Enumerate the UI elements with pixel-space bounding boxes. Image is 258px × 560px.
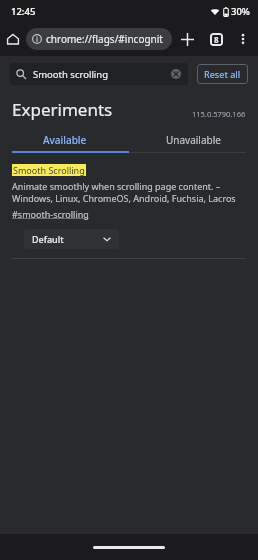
button[interactable]: #smooth-scrolling bbox=[12, 208, 89, 220]
button[interactable]: Reset all bbox=[197, 64, 248, 84]
staticText: Reset all bbox=[204, 68, 241, 80]
staticText: chrome://flags/#incognit bbox=[46, 32, 163, 46]
staticText: 115.0.5790.166 bbox=[192, 109, 246, 119]
staticText: Smooth Scrolling bbox=[13, 164, 85, 176]
staticText: Unavailable bbox=[166, 133, 221, 147]
button[interactable]: Smooth scrolling bbox=[10, 63, 188, 85]
staticText: 30% bbox=[231, 5, 250, 18]
button[interactable]: Available bbox=[0, 129, 129, 151]
button[interactable]: New tab bbox=[172, 24, 202, 54]
staticText: Animate smoothly when scrolling page con… bbox=[12, 180, 246, 205]
button[interactable]: Default bbox=[24, 229, 119, 249]
staticText: 8 bbox=[214, 34, 219, 45]
button[interactable]: Tabs bbox=[202, 25, 230, 53]
staticText: Smooth scrolling bbox=[33, 68, 170, 81]
button[interactable]: More options bbox=[230, 26, 256, 52]
button[interactable]: Clear search bbox=[170, 68, 182, 80]
button[interactable]: chrome://flags/#incognit bbox=[26, 28, 172, 50]
staticText: 12:45 bbox=[11, 5, 36, 18]
button[interactable]: Home bbox=[0, 26, 26, 52]
button[interactable]: Unavailable bbox=[129, 129, 258, 151]
staticText: Experiments bbox=[12, 98, 113, 121]
staticText: Available bbox=[43, 133, 87, 147]
staticText: Default bbox=[32, 233, 103, 245]
